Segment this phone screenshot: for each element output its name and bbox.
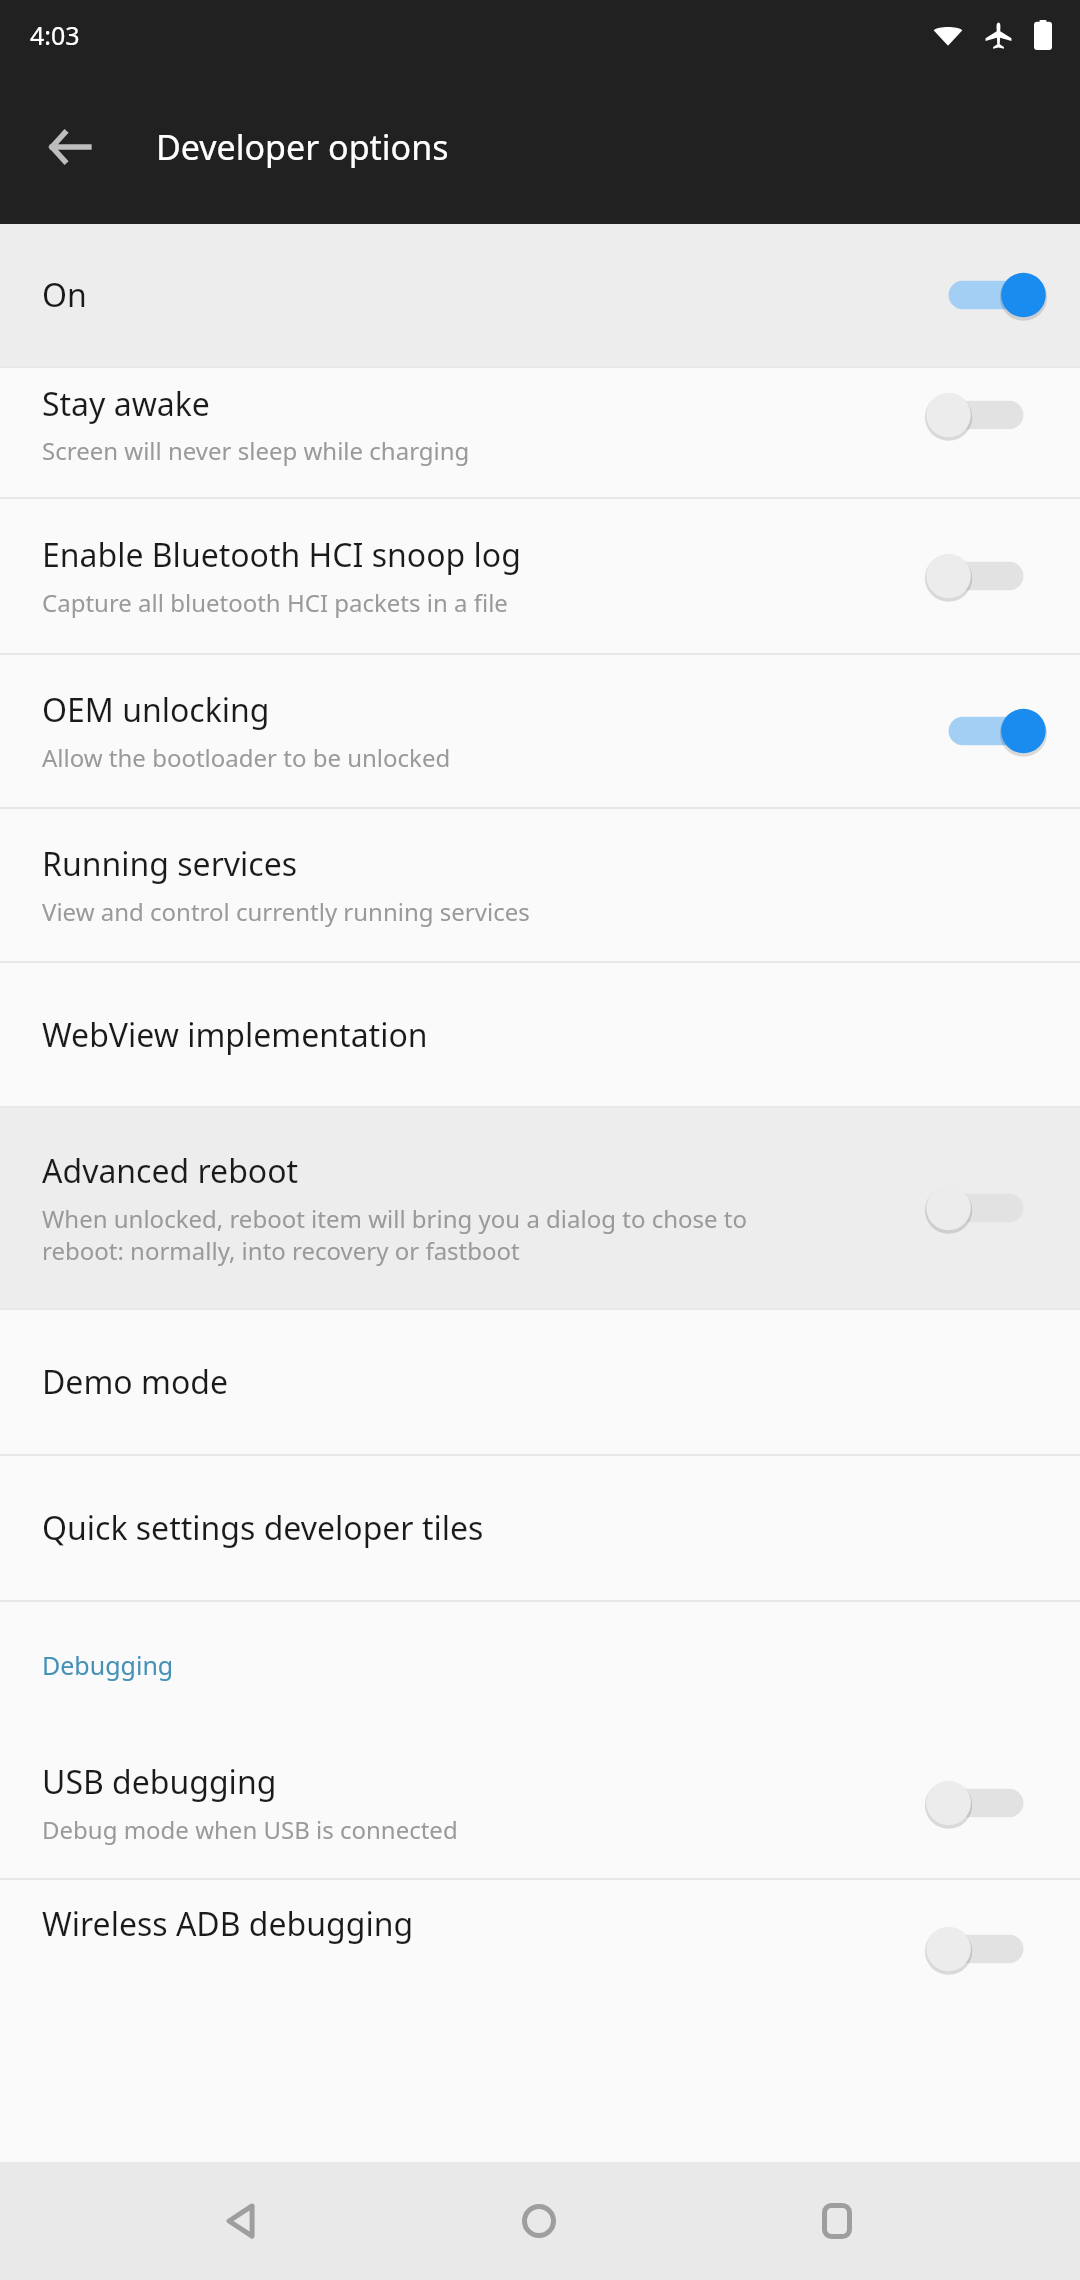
button[interactable]: Enable Bluetooth HCI snoop log	[0, 499, 1080, 653]
staticText: Debug mode when USB is connected	[42, 1813, 458, 1846]
button[interactable]: OEM unlocking	[0, 655, 1080, 807]
button[interactable]: Toggle off	[934, 1918, 1038, 1980]
staticText: OEM unlocking	[42, 688, 270, 732]
button[interactable]: Toggle off	[934, 1772, 1038, 1834]
staticText: Quick settings developer tiles	[42, 1506, 484, 1550]
staticText: Debugging	[42, 1648, 174, 1682]
button[interactable]: Recents	[782, 2166, 892, 2276]
button[interactable]: Back	[28, 105, 112, 189]
staticText: Developer options	[156, 124, 449, 170]
button[interactable]: Toggle off	[934, 384, 1038, 446]
button[interactable]: WebView implementation	[0, 963, 1080, 1106]
staticText: WebView implementation	[42, 1013, 428, 1057]
staticText: Advanced reboot	[42, 1149, 299, 1193]
button[interactable]: Toggle on	[934, 700, 1038, 762]
staticText: View and control currently running servi…	[42, 895, 530, 928]
button[interactable]: Back	[187, 2166, 297, 2276]
button[interactable]: Wireless ADB debugging	[0, 1880, 1080, 1946]
staticText: Stay awake	[42, 382, 210, 426]
staticText: Enable Bluetooth HCI snoop log	[42, 533, 521, 577]
staticText: Capture all bluetooth HCI packets in a f…	[42, 586, 508, 619]
button[interactable]: Quick settings developer tiles	[0, 1456, 1080, 1600]
button[interactable]: Toggle off	[934, 545, 1038, 607]
staticText: Running services	[42, 842, 298, 886]
staticText: Wireless ADB debugging	[42, 1902, 414, 1946]
staticText: Screen will never sleep while charging	[42, 434, 470, 467]
button[interactable]: Advanced reboot	[0, 1108, 1080, 1308]
button[interactable]: Toggle off	[934, 1177, 1038, 1239]
staticText: Allow the bootloader to be unlocked	[42, 741, 451, 774]
staticText: When unlocked, reboot item will bring yo…	[42, 1202, 747, 1267]
button[interactable]: Running services	[0, 809, 1080, 961]
staticText: USB debugging	[42, 1760, 277, 1804]
button[interactable]: Toggle on	[934, 264, 1038, 326]
button[interactable]: Home	[484, 2166, 594, 2276]
button[interactable]: On	[0, 224, 1080, 366]
button[interactable]: Demo mode	[0, 1310, 1080, 1454]
staticText: Demo mode	[42, 1360, 229, 1404]
staticText: 4:03	[30, 18, 80, 52]
button[interactable]: USB debugging	[0, 1728, 1080, 1878]
staticText: On	[42, 273, 87, 317]
button[interactable]: Stay awake	[0, 368, 1080, 497]
